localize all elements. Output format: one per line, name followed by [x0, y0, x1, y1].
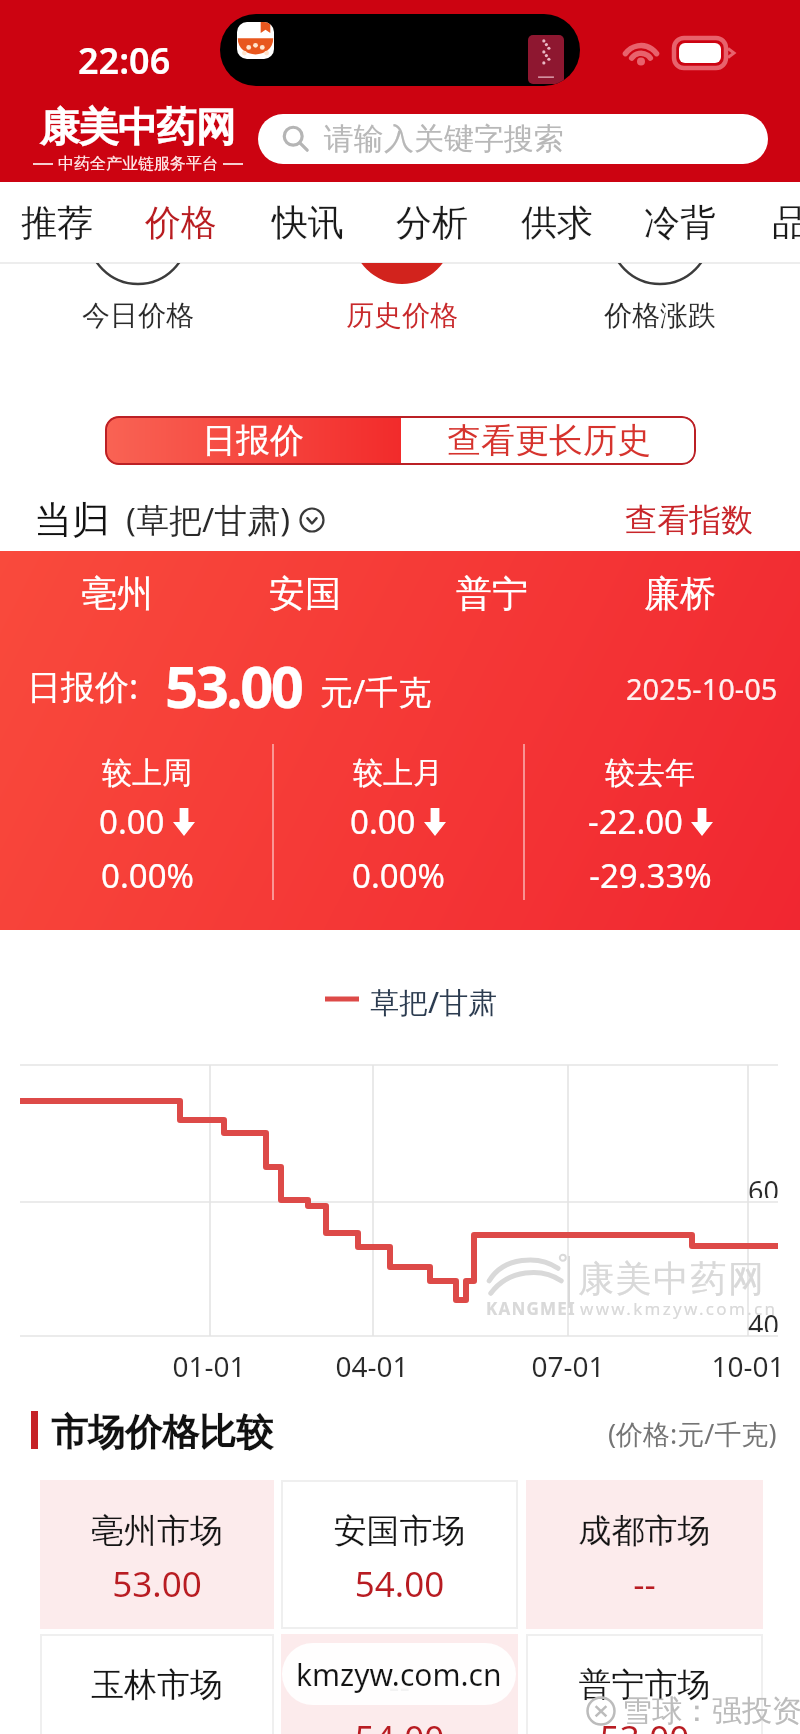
staticText: 较上周: [102, 754, 192, 792]
button[interactable]: 快讯: [248, 182, 368, 263]
staticText: 元/千克: [320, 669, 432, 714]
staticText: 查看更长历史: [447, 419, 651, 462]
staticText: 推荐: [21, 200, 93, 245]
staticText: 品: [772, 200, 800, 245]
button[interactable]: 分析: [372, 182, 492, 263]
staticText: 康美中药网: [40, 102, 235, 152]
staticText: 快讯: [272, 200, 344, 245]
staticText: --: [281, 1664, 518, 1709]
button[interactable]: 安国: [245, 559, 365, 627]
staticText: 普宁: [456, 571, 528, 616]
staticText: kmzyw.com.cn: [296, 1654, 502, 1695]
button[interactable]: 品: [730, 182, 800, 263]
staticText: KANGMEI: [486, 1297, 576, 1320]
staticText: www.kmzyw.com.cn: [580, 1297, 778, 1320]
staticText: 0.00%: [352, 853, 445, 898]
button[interactable]: 玉林市场: [40, 1634, 274, 1734]
staticText: 较去年: [605, 754, 695, 792]
staticText: 亳州: [81, 571, 153, 616]
button[interactable]: 推荐: [0, 182, 117, 263]
button[interactable]: 冷背: [620, 182, 740, 263]
staticText: --: [526, 1560, 763, 1608]
staticText: 0.00%: [101, 853, 194, 898]
staticText: 53.00: [40, 1560, 274, 1608]
staticText: 普宁市场: [526, 1664, 763, 1706]
staticText: 价格涨跌: [604, 298, 716, 333]
staticText: 价格: [145, 200, 217, 245]
button[interactable]: 今日价格: [58, 287, 218, 343]
staticText: 供求: [521, 200, 593, 245]
staticText: 22:06: [78, 36, 171, 85]
staticText: 查看指数: [625, 500, 753, 540]
staticText: 成都市场: [526, 1510, 763, 1552]
staticText: 康美中药网: [578, 1256, 766, 1301]
staticText: 玉林市场: [40, 1664, 274, 1706]
staticText: 01-01: [172, 1347, 246, 1385]
staticText: 日报价:: [27, 663, 139, 709]
staticText: 2025-10-05: [626, 669, 778, 708]
staticText: 10-01: [711, 1347, 785, 1385]
staticText: 53.00: [165, 646, 302, 725]
staticText: (草把/甘肃): [126, 497, 291, 542]
button[interactable]: 安国市场: [281, 1480, 518, 1629]
button[interactable]: 请输入关键字搜索: [258, 114, 768, 164]
button[interactable]: 日报价: [105, 416, 401, 465]
button[interactable]: 廉桥: [620, 559, 740, 627]
staticText: 中药全产业链服务平台: [58, 154, 218, 174]
staticText: 历史价格: [346, 298, 458, 333]
staticText: 雪球：强投资本: [622, 1692, 800, 1730]
staticText: 54.00: [281, 1714, 518, 1734]
staticText: 今日价格: [82, 298, 194, 333]
staticText: 0.00: [350, 799, 416, 844]
staticText: 较上月: [353, 754, 443, 792]
staticText: 冷背: [644, 200, 716, 245]
staticText: 54.00: [281, 1560, 518, 1608]
staticText: 分析: [396, 200, 468, 245]
button[interactable]: 查看更长历史: [401, 416, 696, 465]
button[interactable]: 供求: [497, 182, 617, 263]
staticText: 53.00: [526, 1714, 763, 1734]
button[interactable]: 查看指数: [625, 488, 775, 551]
staticText: 07-01: [531, 1347, 605, 1385]
button[interactable]: --: [281, 1634, 518, 1734]
staticText: 安国市场: [281, 1510, 518, 1552]
staticText: 请输入关键字搜索: [324, 120, 564, 158]
button[interactable]: 普宁: [432, 559, 552, 627]
button[interactable]: 亳州: [57, 559, 177, 627]
staticText: 安国: [269, 571, 341, 616]
staticText: 40: [748, 1306, 779, 1332]
staticText: -22.00: [588, 799, 683, 844]
button[interactable]: 价格涨跌: [580, 287, 740, 343]
staticText: -29.33%: [589, 853, 712, 898]
button[interactable]: 成都市场: [526, 1480, 763, 1629]
staticText: 日报价: [202, 419, 304, 462]
staticText: 亳州市场: [40, 1510, 274, 1552]
button[interactable]: 价格: [121, 182, 241, 263]
staticText: (价格:元/千克): [608, 1415, 777, 1452]
staticText: 草把/甘肃: [370, 982, 498, 1022]
button[interactable]: 当归: [34, 488, 364, 551]
staticText: 廉桥: [644, 571, 716, 616]
staticText: 60: [748, 1172, 779, 1198]
staticText: 0.00: [99, 799, 165, 844]
staticText: 市场价格比较: [51, 1409, 273, 1456]
staticText: 当归: [34, 496, 110, 544]
button[interactable]: kmzyw.com.cn: [282, 1643, 516, 1705]
staticText: 04-01: [335, 1347, 409, 1385]
button[interactable]: 亳州市场: [40, 1480, 274, 1629]
button[interactable]: 历史价格: [322, 287, 482, 343]
button[interactable]: 普宁市场: [526, 1634, 763, 1734]
